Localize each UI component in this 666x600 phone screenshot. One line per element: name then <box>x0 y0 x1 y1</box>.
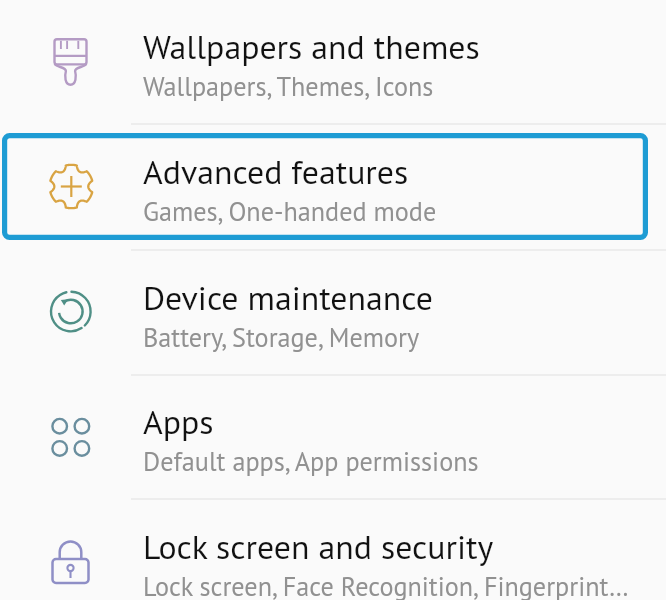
button[interactable]: Apps <box>0 374 666 498</box>
button[interactable]: Device maintenance <box>0 249 666 374</box>
staticText: Default apps, App permissions <box>143 444 479 478</box>
button[interactable]: Lock screen and security <box>0 498 666 600</box>
button[interactable]: Advanced features <box>0 123 666 249</box>
staticText: Wallpapers and themes <box>143 25 480 69</box>
staticText: Apps <box>143 400 214 444</box>
button[interactable]: Wallpapers and themes <box>0 0 666 123</box>
staticText: Lock screen and security <box>143 525 494 569</box>
staticText: Games, One-handed mode <box>143 194 437 228</box>
staticText: Wallpapers, Themes, Icons <box>143 69 434 103</box>
staticText: Lock screen, Face Recognition, Fingerpri… <box>143 569 629 600</box>
staticText: Advanced features <box>143 150 409 194</box>
staticText: Battery, Storage, Memory <box>143 320 420 354</box>
staticText: Device maintenance <box>143 276 433 320</box>
